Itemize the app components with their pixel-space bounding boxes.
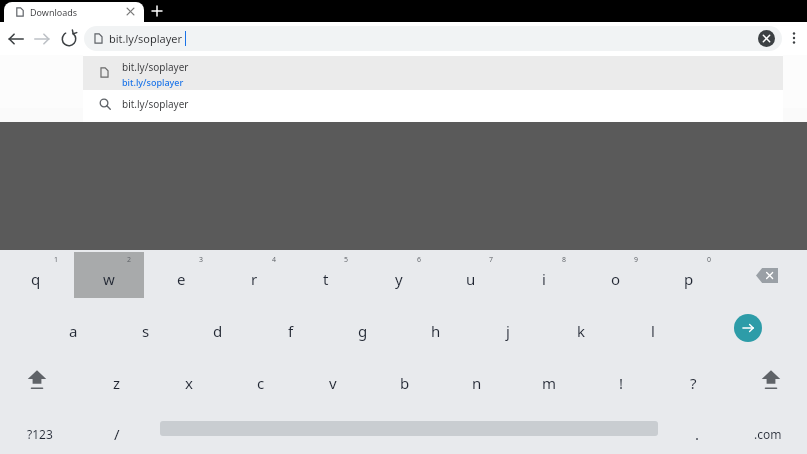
staticText: 7 (489, 255, 494, 265)
staticText: . (695, 424, 700, 444)
button[interactable]: g (328, 304, 398, 350)
staticText: ? (690, 373, 697, 393)
button[interactable]: / (82, 408, 152, 452)
button[interactable]: Downloads (4, 2, 144, 22)
button[interactable]: c (226, 356, 296, 402)
staticText: v (329, 373, 337, 393)
staticText: / (114, 424, 120, 444)
button[interactable]: x (154, 356, 224, 402)
button[interactable]: Forward (30, 27, 54, 51)
button[interactable]: 3 (146, 252, 216, 298)
button[interactable] (74, 252, 144, 298)
button[interactable]: ?123 (3, 408, 77, 452)
staticText: n (472, 373, 482, 393)
staticText: z (113, 373, 121, 393)
button[interactable]: s (111, 304, 181, 350)
staticText: h (431, 321, 441, 341)
staticText: ! (619, 373, 624, 393)
button[interactable]: 5 (291, 252, 361, 298)
staticText: s (142, 321, 150, 341)
button[interactable]: Go (734, 314, 762, 342)
staticText: p (684, 269, 694, 289)
staticText: u (466, 269, 476, 289)
button[interactable]: 7 (436, 252, 506, 298)
button[interactable]: ? (658, 356, 728, 402)
staticText: a (69, 321, 78, 341)
button[interactable]: 2 (74, 252, 144, 298)
button[interactable]: Close tab (122, 3, 139, 20)
staticText: w (103, 269, 115, 289)
staticText: k (577, 321, 586, 341)
button[interactable]: New tab (148, 2, 166, 20)
staticText: 0 (707, 255, 712, 265)
button[interactable]: 6 (364, 252, 434, 298)
staticText: 4 (272, 255, 277, 265)
button[interactable]: More options (784, 28, 804, 48)
button[interactable]: Back (4, 27, 28, 51)
staticText: bit.ly/soplayer (122, 97, 189, 111)
button[interactable]: k (546, 304, 616, 350)
button[interactable]: a (38, 304, 108, 350)
staticText: Downloads (30, 6, 78, 18)
button[interactable]: bit.ly/soplayer (83, 90, 783, 118)
staticText: 9 (634, 255, 639, 265)
staticText: bit.ly/soplayer (122, 60, 189, 74)
staticText: 3 (199, 255, 204, 265)
button[interactable]: Reload (57, 27, 81, 51)
button[interactable]: Shift (8, 356, 66, 402)
staticText: f (288, 321, 294, 341)
staticText: bit.ly/soplayer (122, 76, 184, 88)
staticText: g (358, 321, 368, 341)
staticText: j (506, 321, 510, 341)
button[interactable]: ! (586, 356, 656, 402)
button[interactable]: 9 (581, 252, 651, 298)
button[interactable]: .com (732, 408, 804, 452)
staticText: r (251, 269, 258, 289)
button[interactable]: h (401, 304, 471, 350)
staticText: q (31, 269, 41, 289)
staticText: 8 (562, 255, 567, 265)
staticText: .com (754, 426, 782, 442)
button[interactable]: 8 (509, 252, 579, 298)
button[interactable]: m (514, 356, 584, 402)
button[interactable]: f (256, 304, 326, 350)
staticText: e (177, 269, 186, 289)
button[interactable]: bit.ly/soplayer (83, 56, 783, 90)
button[interactable]: j (473, 304, 543, 350)
staticText: d (213, 321, 223, 341)
staticText: l (651, 321, 655, 341)
button[interactable]: 1 (1, 252, 71, 298)
staticText: x (185, 373, 193, 393)
button[interactable]: z (82, 356, 152, 402)
button[interactable]: bit.ly/soplayer (84, 26, 782, 51)
button[interactable]: Shift (742, 356, 800, 402)
staticText: m (542, 373, 557, 393)
staticText: 2 (127, 255, 132, 265)
staticText: ?123 (27, 426, 53, 442)
staticText: t (323, 269, 329, 289)
button[interactable]: l (618, 304, 688, 350)
button[interactable]: Backspace (737, 252, 797, 298)
button[interactable]: Clear (758, 30, 775, 47)
button[interactable]: v (298, 356, 368, 402)
button[interactable]: 4 (219, 252, 289, 298)
staticText: b (400, 373, 410, 393)
staticText: bit.ly/soplayer (109, 31, 183, 46)
button[interactable]: . (667, 408, 727, 452)
staticText: y (395, 269, 403, 289)
staticText: 1 (54, 255, 59, 265)
staticText: 5 (344, 255, 349, 265)
button[interactable]: b (370, 356, 440, 402)
staticText: o (611, 269, 621, 289)
button[interactable]: n (442, 356, 512, 402)
staticText: 6 (417, 255, 422, 265)
button[interactable]: d (183, 304, 253, 350)
staticText: i (542, 269, 546, 289)
staticText: c (257, 373, 265, 393)
button[interactable]: 0 (654, 252, 724, 298)
